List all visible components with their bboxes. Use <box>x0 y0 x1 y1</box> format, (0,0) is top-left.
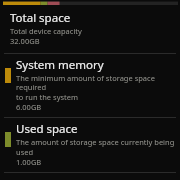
staticText: Total device capacity <box>10 26 82 36</box>
staticText: Total space <box>10 10 71 26</box>
staticText: 1.00GB <box>16 157 42 167</box>
button[interactable]: System memory <box>0 55 180 114</box>
staticText: 6.00GB <box>16 102 42 112</box>
button[interactable]: Used space <box>0 119 180 169</box>
other: Storage capacity bar <box>0 0 180 7</box>
staticText: to run the system <box>16 92 78 102</box>
staticText: Used space <box>16 121 78 137</box>
staticText: 32.00GB <box>10 36 40 46</box>
button[interactable]: Total space <box>0 7 180 48</box>
staticText: used <box>16 147 34 157</box>
staticText: The amount of storage space currently be… <box>16 137 175 147</box>
staticText: System memory <box>16 57 104 73</box>
other: Storage <box>0 0 180 180</box>
staticText: The minimum amount of storage space requ… <box>16 73 176 92</box>
